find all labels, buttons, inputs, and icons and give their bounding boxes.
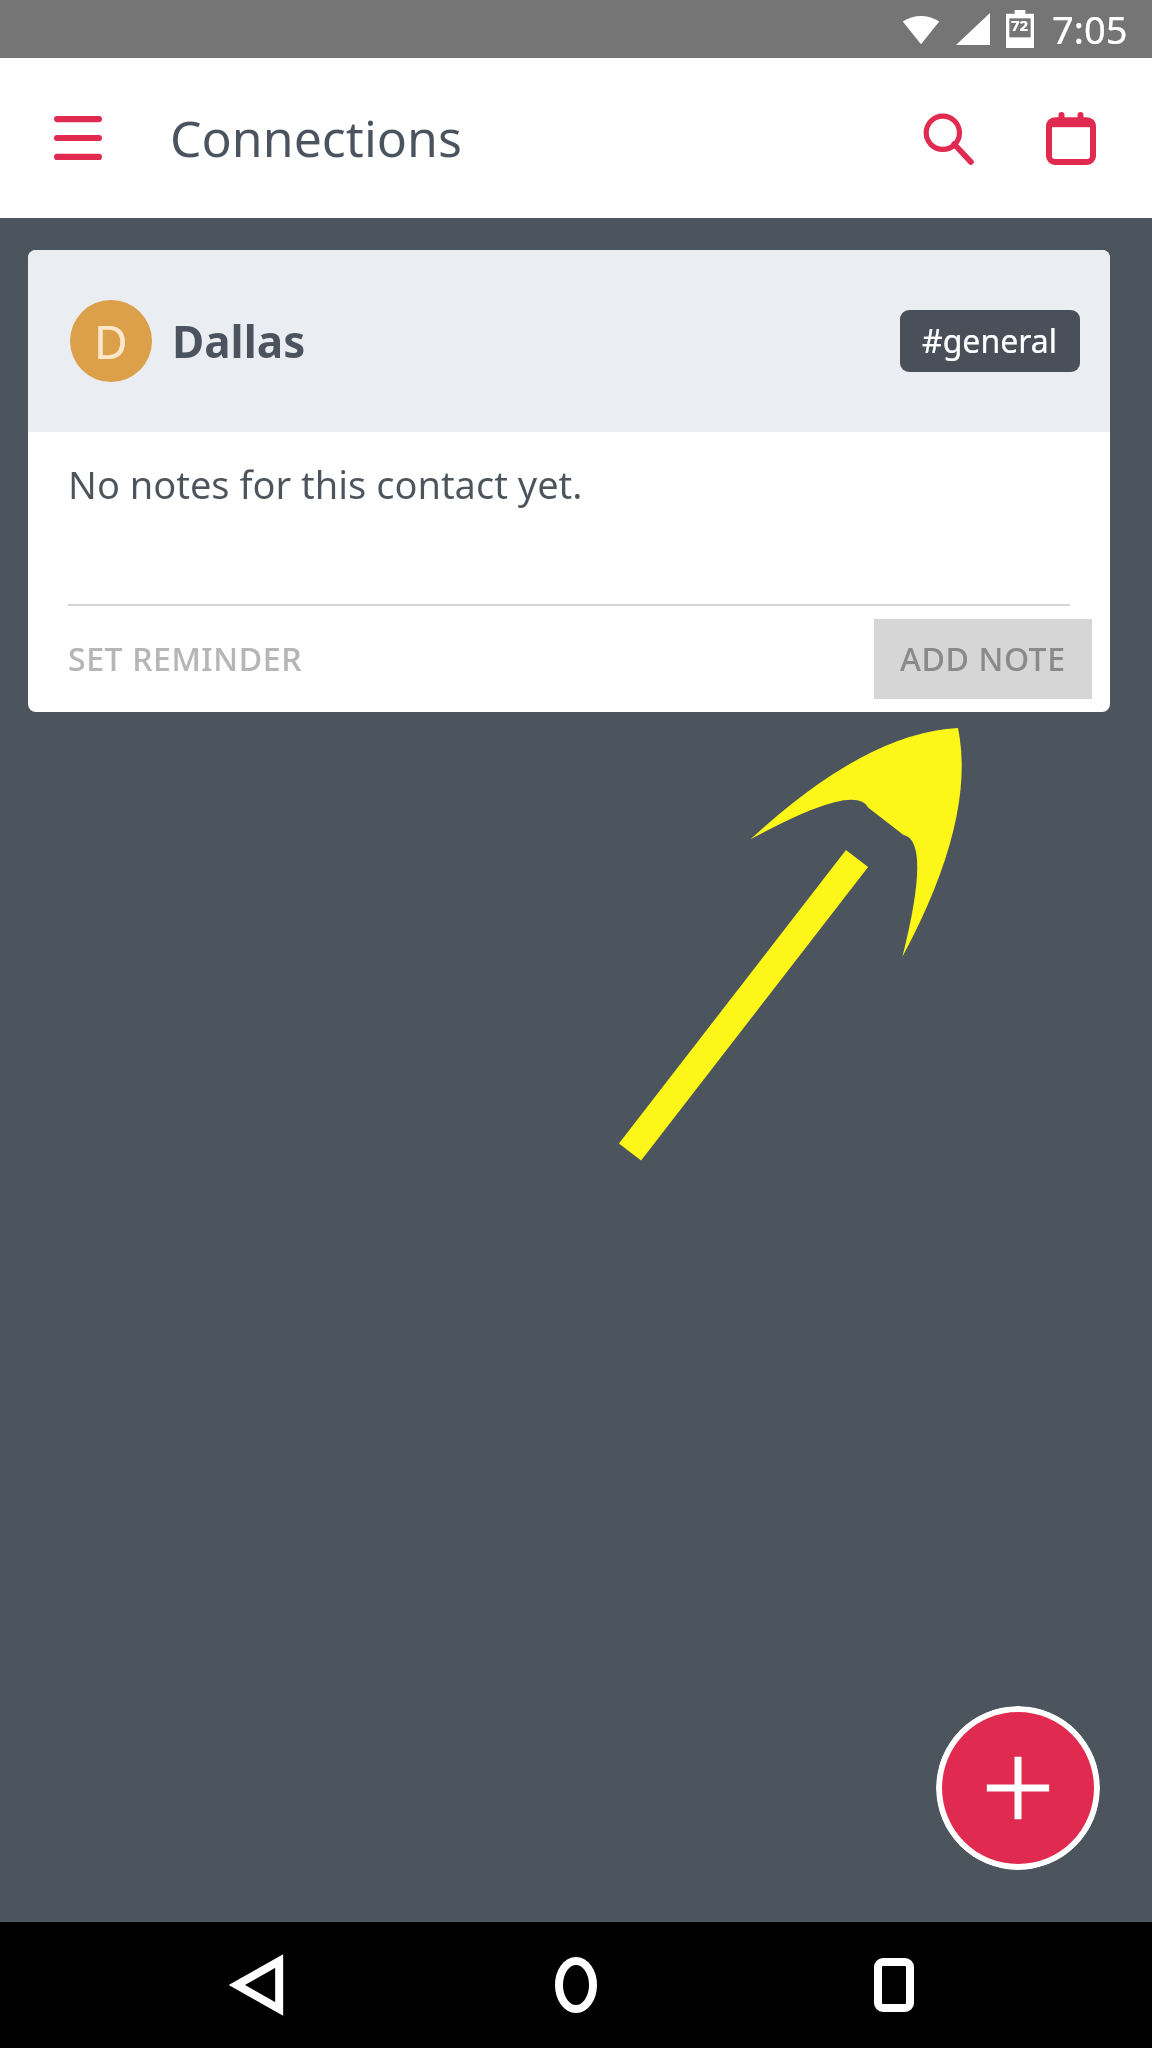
button[interactable]: SET REMINDER xyxy=(44,619,326,699)
button[interactable]: Home xyxy=(516,1925,636,2045)
button[interactable]: Open navigation menu xyxy=(38,98,118,178)
staticText: 7:05 xyxy=(1052,3,1128,55)
staticText: SET REMINDER xyxy=(68,637,302,681)
staticText: No notes for this contact yet. xyxy=(68,458,583,510)
staticText: 72 xyxy=(1011,15,1029,35)
staticText: D xyxy=(94,310,128,373)
button[interactable]: ADD NOTE xyxy=(874,619,1092,699)
button[interactable]: Recent apps xyxy=(834,1925,954,2045)
button[interactable]: D xyxy=(28,250,1110,712)
button[interactable]: Add connection xyxy=(936,1706,1100,1870)
staticText: Dallas xyxy=(172,311,306,371)
button[interactable]: Calendar xyxy=(1026,93,1116,183)
button[interactable]: Back xyxy=(198,1925,318,2045)
button[interactable]: #general xyxy=(900,310,1080,372)
staticText: Connections xyxy=(170,104,462,172)
button[interactable]: Search xyxy=(902,93,992,183)
staticText: ADD NOTE xyxy=(900,637,1066,681)
staticText: #general xyxy=(922,319,1058,363)
